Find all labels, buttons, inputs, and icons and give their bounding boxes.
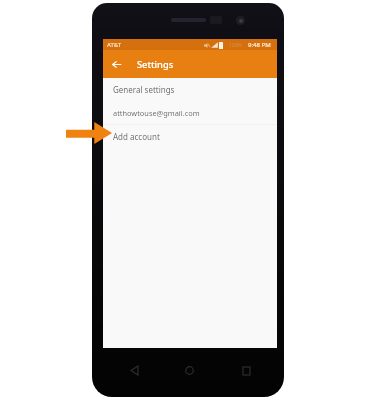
staticText: 9:48 PM	[248, 41, 271, 49]
staticText: 100%	[229, 42, 242, 49]
button[interactable]: Home	[179, 360, 200, 381]
button[interactable]: Add account	[103, 125, 277, 147]
staticText: Settings	[137, 58, 174, 71]
staticText: AT&T	[107, 41, 122, 49]
staticText: atthowtouse@gmail.com	[113, 108, 200, 118]
button[interactable]: Navigate up	[105, 53, 127, 75]
staticText: General settings	[113, 84, 175, 95]
button[interactable]: General settings	[103, 78, 277, 101]
button[interactable]: Back	[124, 360, 145, 381]
button[interactable]: Recent apps	[236, 360, 257, 381]
staticText: Add account	[113, 131, 160, 142]
button[interactable]: atthowtouse@gmail.com	[103, 101, 277, 124]
